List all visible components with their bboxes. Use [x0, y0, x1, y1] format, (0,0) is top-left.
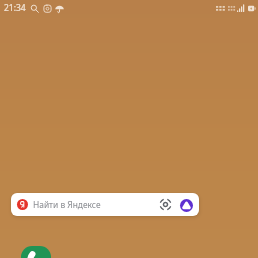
staticText: 21:34: [4, 2, 26, 14]
staticText: Найти в Яндексе: [33, 199, 101, 210]
button[interactable]: Найти в Яндексе: [11, 193, 199, 216]
button[interactable]: Поиск по картинке: [157, 196, 174, 213]
button[interactable]: Алиса: [179, 198, 193, 212]
button[interactable]: Телефон: [21, 246, 51, 258]
